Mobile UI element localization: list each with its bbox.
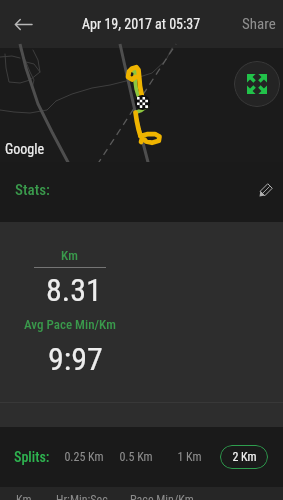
staticText: 0.5 Km (119, 450, 153, 464)
staticText: Avg Pace Min/Km (24, 317, 116, 332)
staticText: 9:97 (48, 340, 103, 378)
button[interactable]: Edit stats (252, 177, 278, 203)
staticText: Share (242, 15, 276, 33)
staticText: Pace Min/Km (130, 493, 194, 500)
button[interactable]: Back (0, 1, 46, 47)
button[interactable]: 2 Km (220, 445, 268, 469)
staticText: Apr 19, 2017 at 05:37 (82, 16, 201, 32)
button[interactable]: Share (228, 0, 283, 48)
staticText: Stats: (15, 181, 50, 199)
staticText: 8.31 (46, 271, 102, 309)
staticText: Km (16, 493, 32, 500)
staticText: Splits: (14, 449, 50, 465)
staticText: 1 Km (177, 450, 202, 464)
button[interactable]: Expand map (234, 61, 280, 107)
staticText: Google (5, 141, 45, 157)
staticText: Hr:Min:Sec (56, 493, 108, 500)
staticText: 2 Km (232, 450, 257, 464)
button[interactable]: 0.5 Km (114, 445, 158, 469)
button[interactable]: 1 Km (172, 445, 206, 469)
staticText: 0.25 Km (64, 450, 104, 464)
button[interactable]: 0.25 Km (60, 445, 108, 469)
staticText: Km (61, 248, 78, 263)
